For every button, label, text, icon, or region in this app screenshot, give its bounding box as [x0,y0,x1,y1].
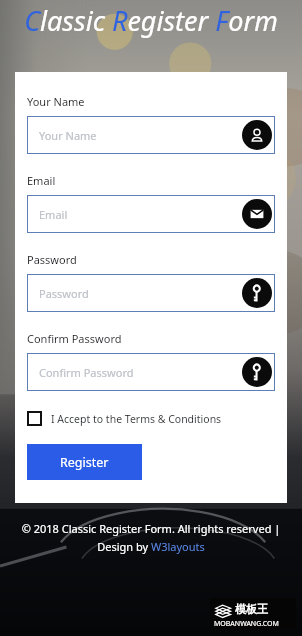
other: User [249,127,265,143]
button[interactable]: Password [27,274,275,312]
button[interactable]: I Accept to the Terms & Conditions [27,409,222,428]
staticText: Email [27,173,56,188]
button[interactable]: Register [27,444,142,480]
staticText: Password [39,286,89,301]
other: Password [249,364,265,380]
staticText: Email [39,207,68,222]
staticText: Password [27,252,77,267]
staticText: 模板王 [235,602,268,616]
staticText: Confirm Password [27,331,122,346]
staticText: Register [60,454,109,471]
staticText: Your Name [39,128,97,143]
button[interactable]: Your Name [27,116,275,154]
staticText: MOBANWANG.COM [214,619,292,629]
staticText: Classic Register Form [24,2,278,39]
button[interactable]: Confirm Password [27,353,275,391]
button[interactable]: Mobanwang watermark [210,598,296,630]
staticText: Confirm Password [39,365,134,380]
other: Password [249,285,265,301]
staticText: © 2018 Classic Register Form. All rights… [16,521,286,554]
button[interactable]: Email [27,195,275,233]
staticText: I Accept to the Terms & Conditions [51,412,222,426]
staticText: Your Name [27,94,85,109]
other: Email [249,206,265,222]
